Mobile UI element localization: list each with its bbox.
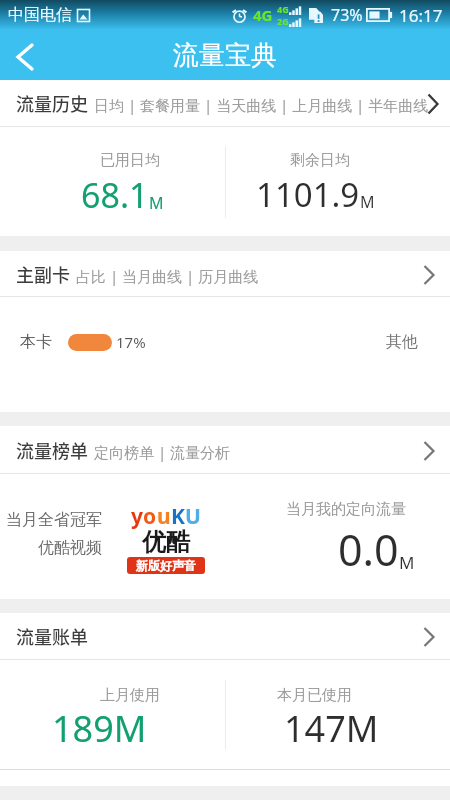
button[interactable]: 主副卡 <box>0 251 450 296</box>
staticText: 本卡 <box>20 332 52 352</box>
button[interactable]: 当月全省冠军 <box>0 474 450 599</box>
staticText: U <box>185 502 201 531</box>
staticText: K <box>171 502 185 531</box>
button[interactable]: 流量榜单 <box>0 426 450 473</box>
staticText: 流量宝典 <box>173 39 277 72</box>
button[interactable]: Back <box>0 31 48 79</box>
staticText: 147M <box>284 704 379 753</box>
button[interactable]: 已用日均 <box>0 127 450 236</box>
staticText: o <box>143 502 157 531</box>
staticText: 4G <box>277 3 289 15</box>
staticText: M <box>399 551 415 574</box>
staticText: 定向榜单 | 流量分析 <box>94 442 231 462</box>
staticText: 0.0 <box>338 520 399 579</box>
staticText: 16:17 <box>399 4 443 27</box>
staticText: 流量榜单 <box>16 437 88 463</box>
staticText: 68.1 <box>81 172 149 218</box>
staticText: M <box>360 191 375 213</box>
staticText: 剩余日均 <box>290 151 350 170</box>
staticText: 优酷 <box>142 527 190 557</box>
staticText: y <box>131 502 143 531</box>
staticText: 73% <box>331 4 363 26</box>
staticText: 4G <box>253 5 273 25</box>
staticText: 当月我的定向流量 <box>286 500 406 519</box>
staticText: M <box>149 192 164 214</box>
staticText: 当月全省冠军 <box>6 510 102 530</box>
staticText: 上月使用 <box>100 686 160 705</box>
staticText: 新版好声音 <box>136 558 196 573</box>
button[interactable]: 本卡 <box>0 297 450 412</box>
button[interactable]: 流量历史 <box>0 80 450 126</box>
button[interactable]: 流量账单 <box>0 613 450 659</box>
staticText: 占比 | 当月曲线 | 历月曲线 <box>76 266 259 286</box>
staticText: 2G <box>277 15 289 27</box>
staticText: 日均 | 套餐用量 | 当天曲线 | 上月曲线 | 半年曲线 <box>94 95 429 115</box>
staticText: 流量账单 <box>16 623 88 649</box>
staticText: 17% <box>116 332 146 352</box>
staticText: u <box>157 502 171 531</box>
staticText: 其他 <box>386 332 418 352</box>
staticText: 主副卡 <box>16 261 70 287</box>
staticText: 1101.9 <box>256 172 360 217</box>
staticText: 已用日均 <box>100 151 160 170</box>
staticText: 中国电信 <box>8 5 72 25</box>
staticText: 本月已使用 <box>277 686 352 705</box>
staticText: 189M <box>52 704 147 753</box>
staticText: 优酷视频 <box>38 538 102 558</box>
staticText: 流量历史 <box>16 90 88 116</box>
button[interactable]: 上月使用 <box>0 660 450 769</box>
